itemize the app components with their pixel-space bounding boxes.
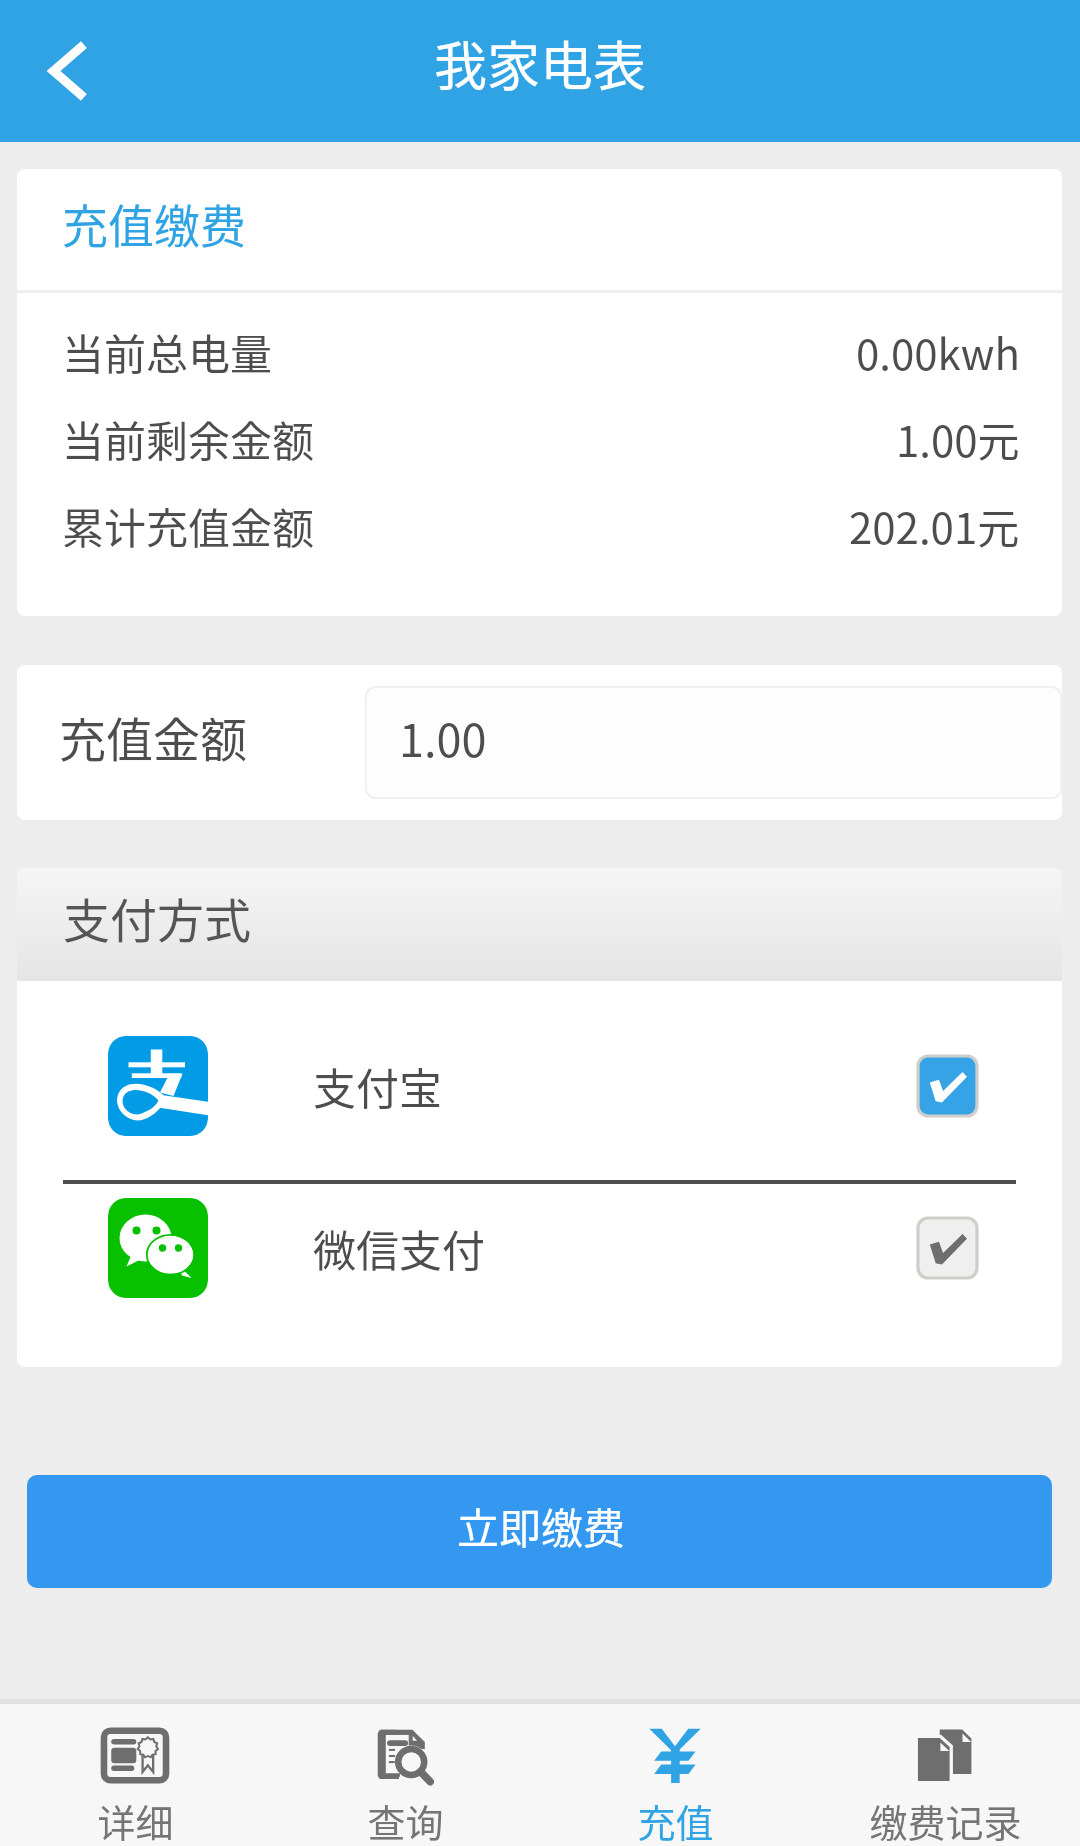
button[interactable]: 充值: [540, 1704, 810, 1846]
staticText: 支付方式: [63, 883, 251, 951]
button[interactable]: 立即缴费: [27, 1475, 1052, 1588]
staticText: 当前剩余金额: [62, 408, 315, 468]
staticText: 充值缴费: [62, 190, 246, 257]
staticText: 1.00元: [896, 408, 1020, 468]
staticText: 立即缴费: [457, 1495, 626, 1556]
staticText: 充值: [637, 1793, 714, 1846]
button[interactable]: 微信支付: [17, 1154, 1062, 1342]
staticText: 支付宝: [313, 1055, 442, 1117]
staticText: 202.01元: [849, 495, 1020, 555]
button[interactable]: 支付宝 selected: [918, 1056, 977, 1116]
button[interactable]: 1.00: [365, 686, 1062, 799]
button[interactable]: 查询: [270, 1704, 540, 1846]
button[interactable]: 微信支付 not selected: [918, 1218, 977, 1278]
staticText: 充值金额: [59, 702, 247, 770]
staticText: 缴费记录: [869, 1793, 1022, 1846]
staticText: 微信支付: [313, 1217, 485, 1279]
button[interactable]: 缴费记录: [810, 1704, 1080, 1846]
button[interactable]: 详细: [0, 1704, 270, 1846]
button[interactable]: 支付宝: [17, 992, 1062, 1180]
staticText: 累计充值金额: [62, 495, 315, 555]
staticText: 当前总电量: [62, 321, 273, 381]
staticText: 查询: [367, 1793, 444, 1846]
staticText: 1.00: [399, 705, 487, 770]
staticText: 详细: [97, 1793, 174, 1846]
staticText: 我家电表: [434, 25, 646, 102]
button[interactable]: Back: [0, 0, 140, 142]
staticText: 0.00kwh: [856, 321, 1020, 381]
